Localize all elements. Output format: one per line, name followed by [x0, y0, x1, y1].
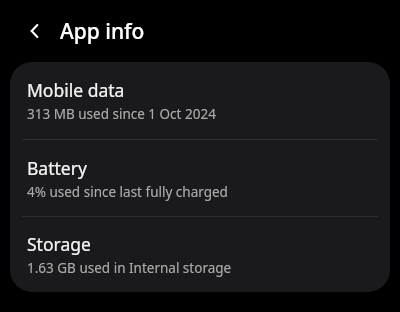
- button[interactable]: Mobile data: [10, 62, 390, 139]
- staticText: Storage: [27, 232, 91, 256]
- staticText: 4% used since last fully charged: [27, 183, 228, 201]
- staticText: Mobile data: [27, 78, 125, 102]
- staticText: App info: [60, 17, 145, 46]
- button[interactable]: Storage: [10, 217, 390, 292]
- button[interactable]: Battery: [10, 140, 390, 216]
- staticText: 1.63 GB used in Internal storage: [27, 259, 232, 277]
- button[interactable]: Back: [20, 17, 48, 45]
- staticText: 313 MB used since 1 Oct 2024: [27, 105, 216, 123]
- staticText: Battery: [27, 156, 87, 180]
